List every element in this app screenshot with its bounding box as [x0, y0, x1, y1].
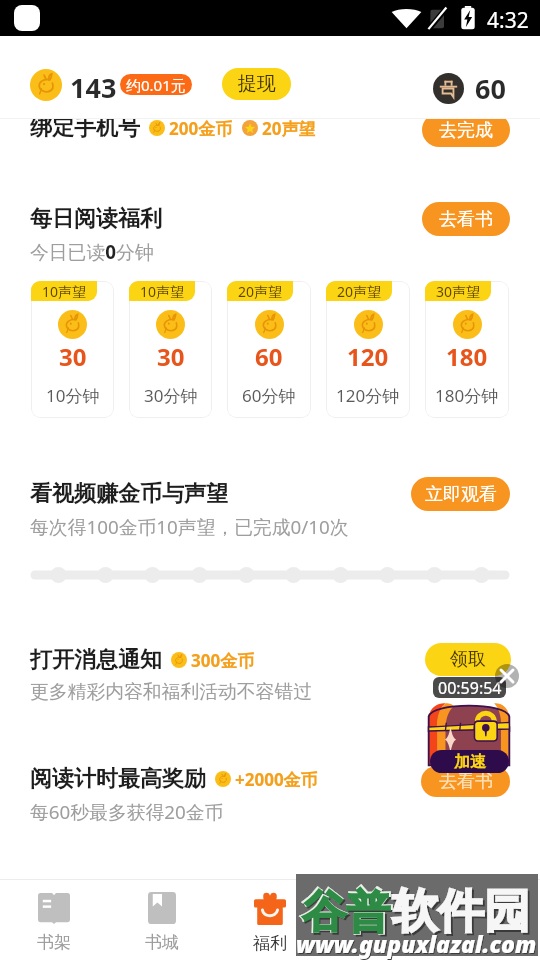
staticText: 180	[446, 340, 488, 373]
staticText: 绑定手机号	[30, 119, 140, 142]
staticText: www.gupuxlazal.com	[297, 929, 538, 960]
button[interactable]: 加速	[430, 750, 509, 773]
staticText: www.gupuxlazal.com	[296, 928, 537, 959]
button[interactable]: 书架	[0, 879, 108, 960]
button[interactable]: 去完成	[422, 119, 510, 147]
button[interactable]: 去看书	[422, 202, 510, 236]
staticText: 20声望	[337, 282, 382, 301]
staticText: 立即观看	[425, 483, 497, 506]
staticText: 30声望	[436, 282, 481, 301]
staticText: 谷普	[300, 883, 392, 941]
staticText: 60	[475, 70, 506, 107]
staticText: 看视频赚金币与声望	[30, 480, 228, 508]
staticText: 更多精彩内容和福利活动不容错过	[30, 680, 312, 704]
button[interactable]: Close	[495, 664, 519, 688]
staticText: 去完成	[439, 119, 493, 142]
staticText: 领取	[450, 648, 486, 671]
staticText: +2000金币	[235, 768, 318, 791]
staticText: 143	[70, 69, 117, 106]
staticText: 听书	[361, 932, 395, 953]
button[interactable]: 听书	[324, 879, 432, 960]
staticText: 4:32	[487, 6, 529, 35]
staticText: 180分钟	[435, 384, 499, 407]
button[interactable]: 我的	[432, 879, 540, 960]
staticText: 10声望	[42, 282, 87, 301]
button[interactable]	[326, 281, 410, 418]
button[interactable]	[30, 69, 62, 101]
staticText: 去看书	[439, 770, 493, 793]
staticText: 20声望	[238, 282, 283, 301]
staticText: 我的	[469, 932, 503, 953]
staticText: 谷普	[302, 885, 390, 940]
staticText: 书架	[37, 932, 71, 953]
staticText: 60	[255, 340, 283, 373]
staticText: 去看书	[439, 208, 493, 231]
staticText: 软件园	[392, 883, 530, 941]
staticText: 每日阅读福利	[30, 205, 162, 233]
staticText: 每次得100金币10声望，已完成0/10次	[30, 514, 349, 540]
staticText: 120分钟	[336, 384, 400, 407]
button[interactable]: 领取	[425, 643, 511, 676]
staticText: 30分钟	[144, 384, 198, 407]
staticText: 30	[157, 340, 185, 373]
button[interactable]: 60	[433, 70, 506, 107]
button[interactable]	[31, 281, 114, 418]
staticText: 20声望	[262, 119, 316, 140]
staticText: 软件园	[394, 885, 532, 943]
staticText: 10分钟	[46, 384, 100, 407]
staticText: 120	[347, 340, 389, 373]
staticText: 打开消息通知	[30, 646, 162, 674]
staticText: 300金币	[191, 649, 255, 672]
button[interactable]: 去看书	[421, 766, 510, 797]
button[interactable]: 约0.01元	[120, 74, 192, 95]
button[interactable]: 立即观看	[411, 477, 510, 511]
staticText: 书城	[145, 932, 179, 953]
staticText: 每60秒最多获得20金币	[30, 799, 224, 825]
staticText: 约0.01元	[126, 75, 186, 95]
button[interactable]: 福利	[216, 879, 324, 960]
staticText: 谷普	[302, 885, 394, 943]
button[interactable]	[425, 281, 509, 418]
staticText: 00:59:54	[438, 677, 502, 698]
button[interactable]: 提现	[222, 68, 291, 100]
button[interactable]	[129, 281, 212, 418]
staticText: 阅读计时最高奖励	[30, 765, 206, 793]
staticText: 30	[59, 340, 87, 373]
staticText: 福利	[253, 933, 287, 954]
staticText: 加速	[454, 752, 486, 772]
staticText: 今日已读0分钟	[30, 239, 154, 265]
button[interactable]	[227, 281, 311, 418]
staticText: 200金币	[169, 119, 233, 140]
staticText: 60分钟	[242, 384, 296, 407]
staticText: 10声望	[140, 282, 185, 301]
button[interactable]: 书城	[108, 879, 216, 960]
staticText: 提现	[238, 72, 276, 96]
